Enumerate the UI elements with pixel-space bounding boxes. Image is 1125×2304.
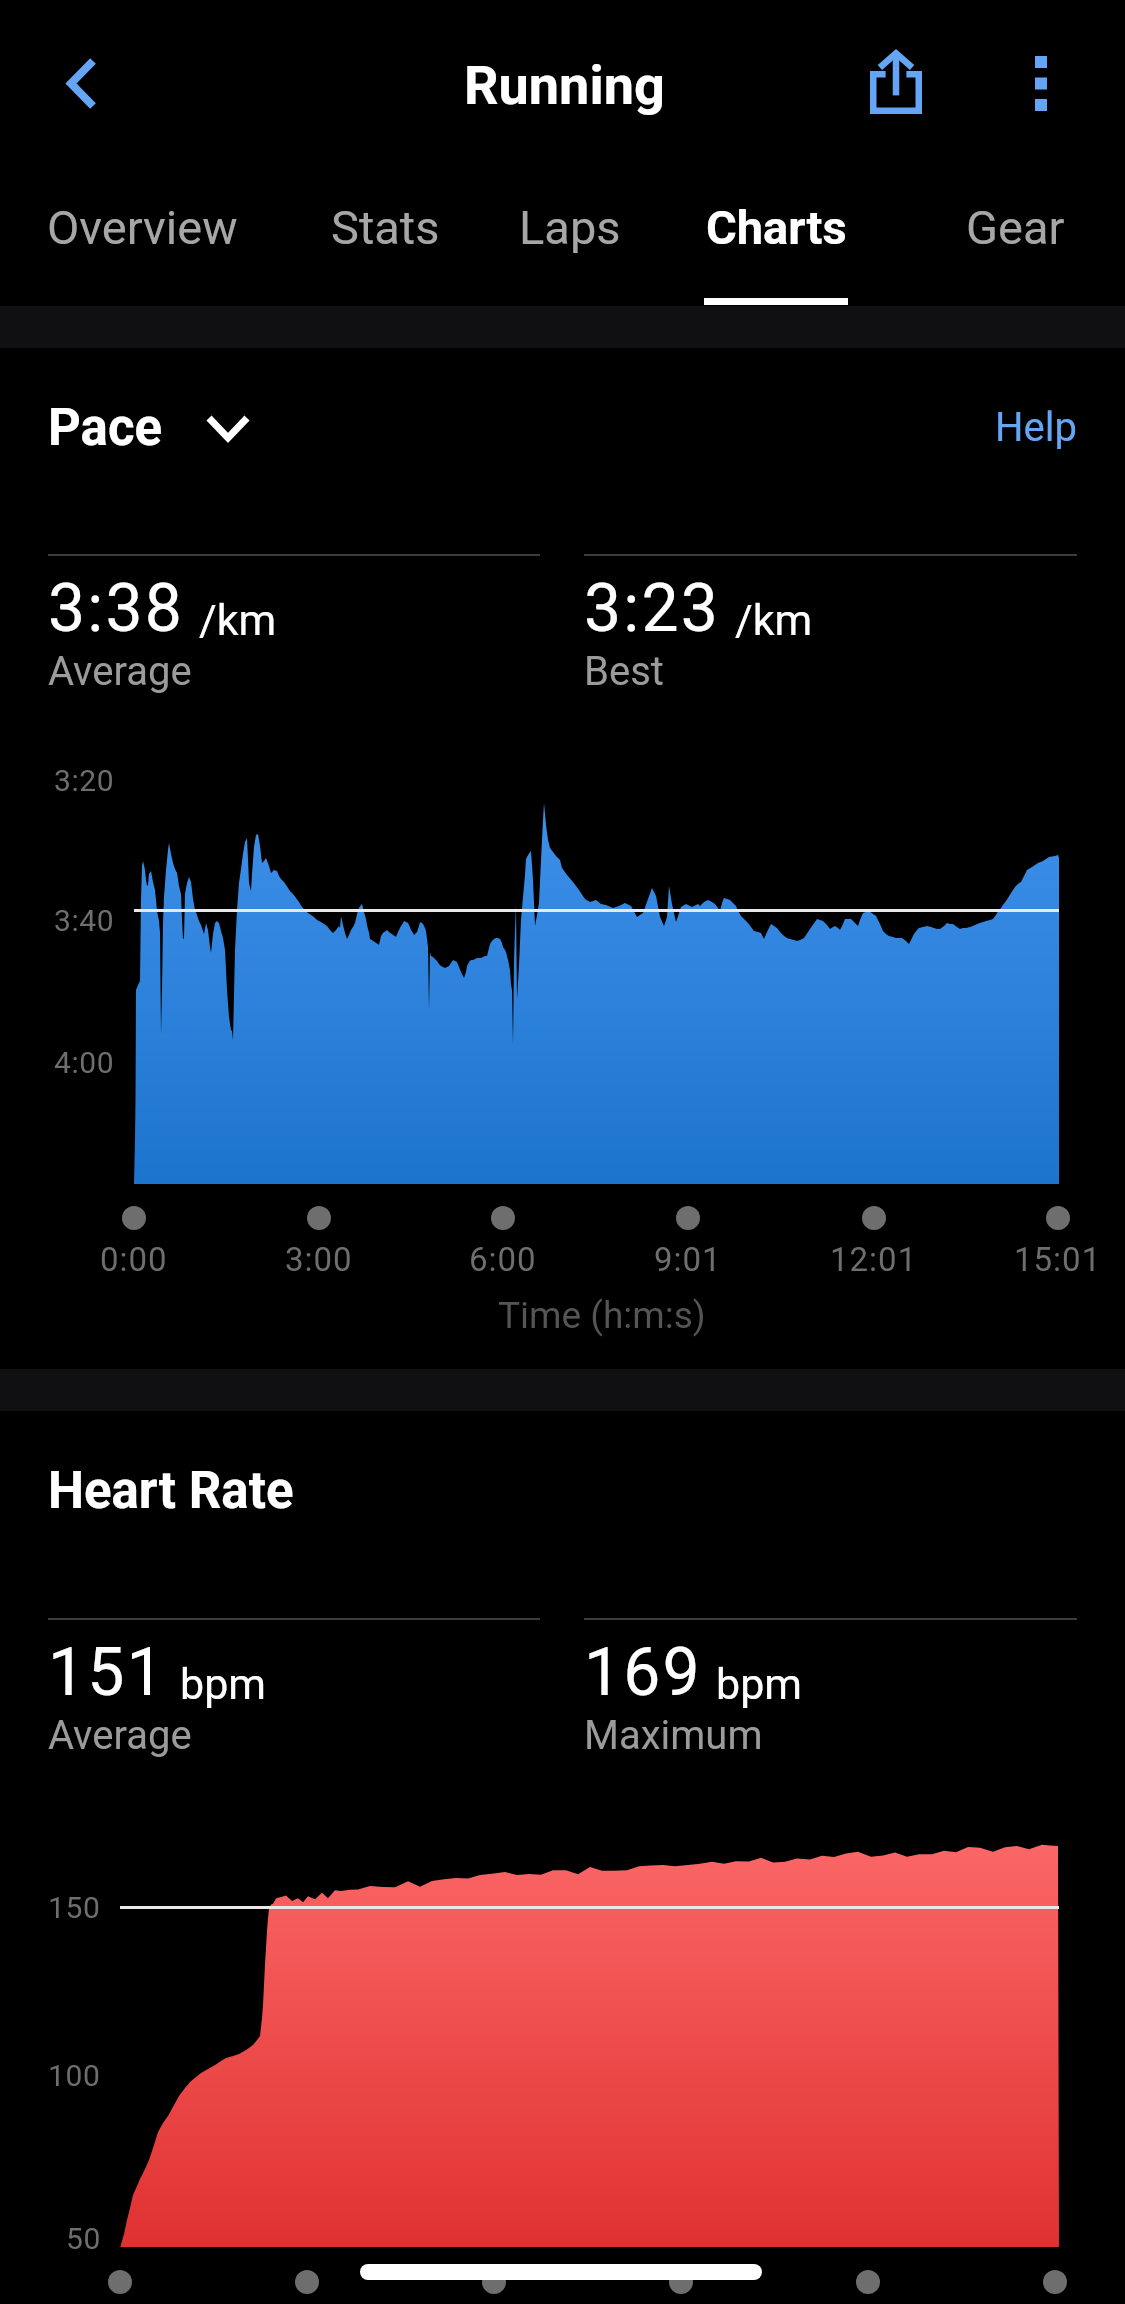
staticText: bpm: [716, 1659, 802, 1709]
staticText: Gear: [966, 200, 1065, 255]
staticText: Time (h:m:s): [498, 1294, 706, 1337]
button[interactable]: Pace: [48, 398, 249, 458]
staticText: Stats: [331, 200, 440, 255]
staticText: Pace: [48, 398, 163, 458]
staticText: 3:20: [54, 763, 115, 798]
button[interactable]: Help: [995, 404, 1077, 451]
staticText: Maximum: [584, 1712, 763, 1759]
button[interactable]: Gear: [944, 168, 1087, 306]
staticText: 6:00: [469, 1240, 537, 1279]
staticText: bpm: [180, 1659, 266, 1709]
button[interactable]: Overview: [24, 168, 260, 306]
staticText: 150: [48, 1890, 101, 1925]
staticText: /km: [735, 595, 813, 645]
button[interactable]: Charts: [682, 168, 870, 306]
staticText: 50: [66, 2221, 101, 2256]
staticText: 100: [48, 2058, 101, 2093]
staticText: 3:23: [584, 570, 721, 647]
button[interactable]: Stats: [310, 168, 461, 306]
staticText: Charts: [706, 200, 847, 255]
staticText: Average: [48, 1712, 192, 1759]
staticText: 151: [48, 1634, 166, 1711]
staticText: 3:40: [54, 903, 115, 938]
staticText: Heart Rate: [48, 1461, 294, 1521]
staticText: 4:00: [54, 1045, 115, 1080]
staticText: 15:01: [1014, 1240, 1102, 1279]
staticText: 0:00: [100, 1240, 168, 1279]
button[interactable]: More options: [985, 27, 1097, 139]
staticText: Overview: [47, 200, 238, 255]
staticText: 12:01: [830, 1240, 918, 1279]
staticText: 3:00: [285, 1240, 353, 1279]
staticText: 9:01: [654, 1240, 722, 1279]
staticText: Laps: [519, 200, 621, 255]
staticText: 3:38: [48, 570, 185, 647]
staticText: 169: [584, 1634, 702, 1711]
button[interactable]: Share: [840, 27, 952, 139]
button[interactable]: Back: [26, 27, 138, 139]
staticText: Best: [584, 648, 664, 695]
button[interactable]: Laps: [498, 168, 641, 306]
staticText: Running: [464, 54, 665, 117]
staticText: Average: [48, 648, 192, 695]
staticText: /km: [199, 595, 277, 645]
